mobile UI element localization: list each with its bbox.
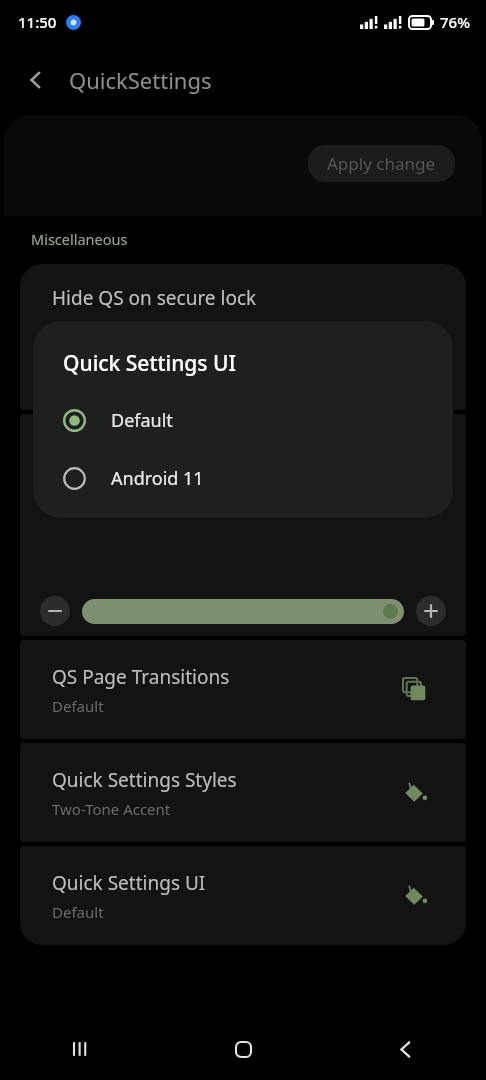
staticText: Quick Settings Styles [52,767,237,793]
staticText: 76% [440,12,470,32]
button[interactable]: Home [162,1018,324,1080]
staticText: Hide QS on secure lock [52,285,257,311]
button[interactable]: Quick Settings Styles [20,743,466,842]
button[interactable]: Hide QS on secure lock [20,264,466,410]
staticText: Two-Tone Accent [52,799,171,819]
staticText: secure lock screen [52,369,177,389]
staticText: Apply change [327,152,436,175]
button[interactable]: Quick Settings UI [20,846,466,945]
button[interactable]: Back [324,1018,486,1080]
button[interactable]: Increase [416,596,446,626]
button[interactable]: Back [14,58,58,102]
staticText: Default [52,902,104,922]
staticText: screen [52,313,111,339]
staticText: Android 11 [111,466,204,491]
button[interactable]: Decrease [40,596,70,626]
button[interactable]: QS Page Transitions [20,640,466,739]
staticText: QS Page Transitions [52,664,230,690]
staticText: Quick Settings UI [52,870,206,896]
staticText: Miscellaneous [31,229,128,249]
button[interactable]: Apply change [308,145,455,182]
button[interactable]: Android 11 [33,461,453,495]
staticText: 11:50 [18,12,57,32]
staticText: Prevent access to QS tiles on [52,347,246,367]
button[interactable]: Decrease [20,414,466,636]
staticText: Quick Settings UI [63,349,236,378]
button[interactable]: Default [33,403,453,437]
button[interactable]: Slider [82,599,404,624]
button[interactable]: Recents [0,1018,162,1080]
staticText: QuickSettings [69,65,212,95]
staticText: Default [111,408,173,433]
staticText: Default [52,696,104,716]
